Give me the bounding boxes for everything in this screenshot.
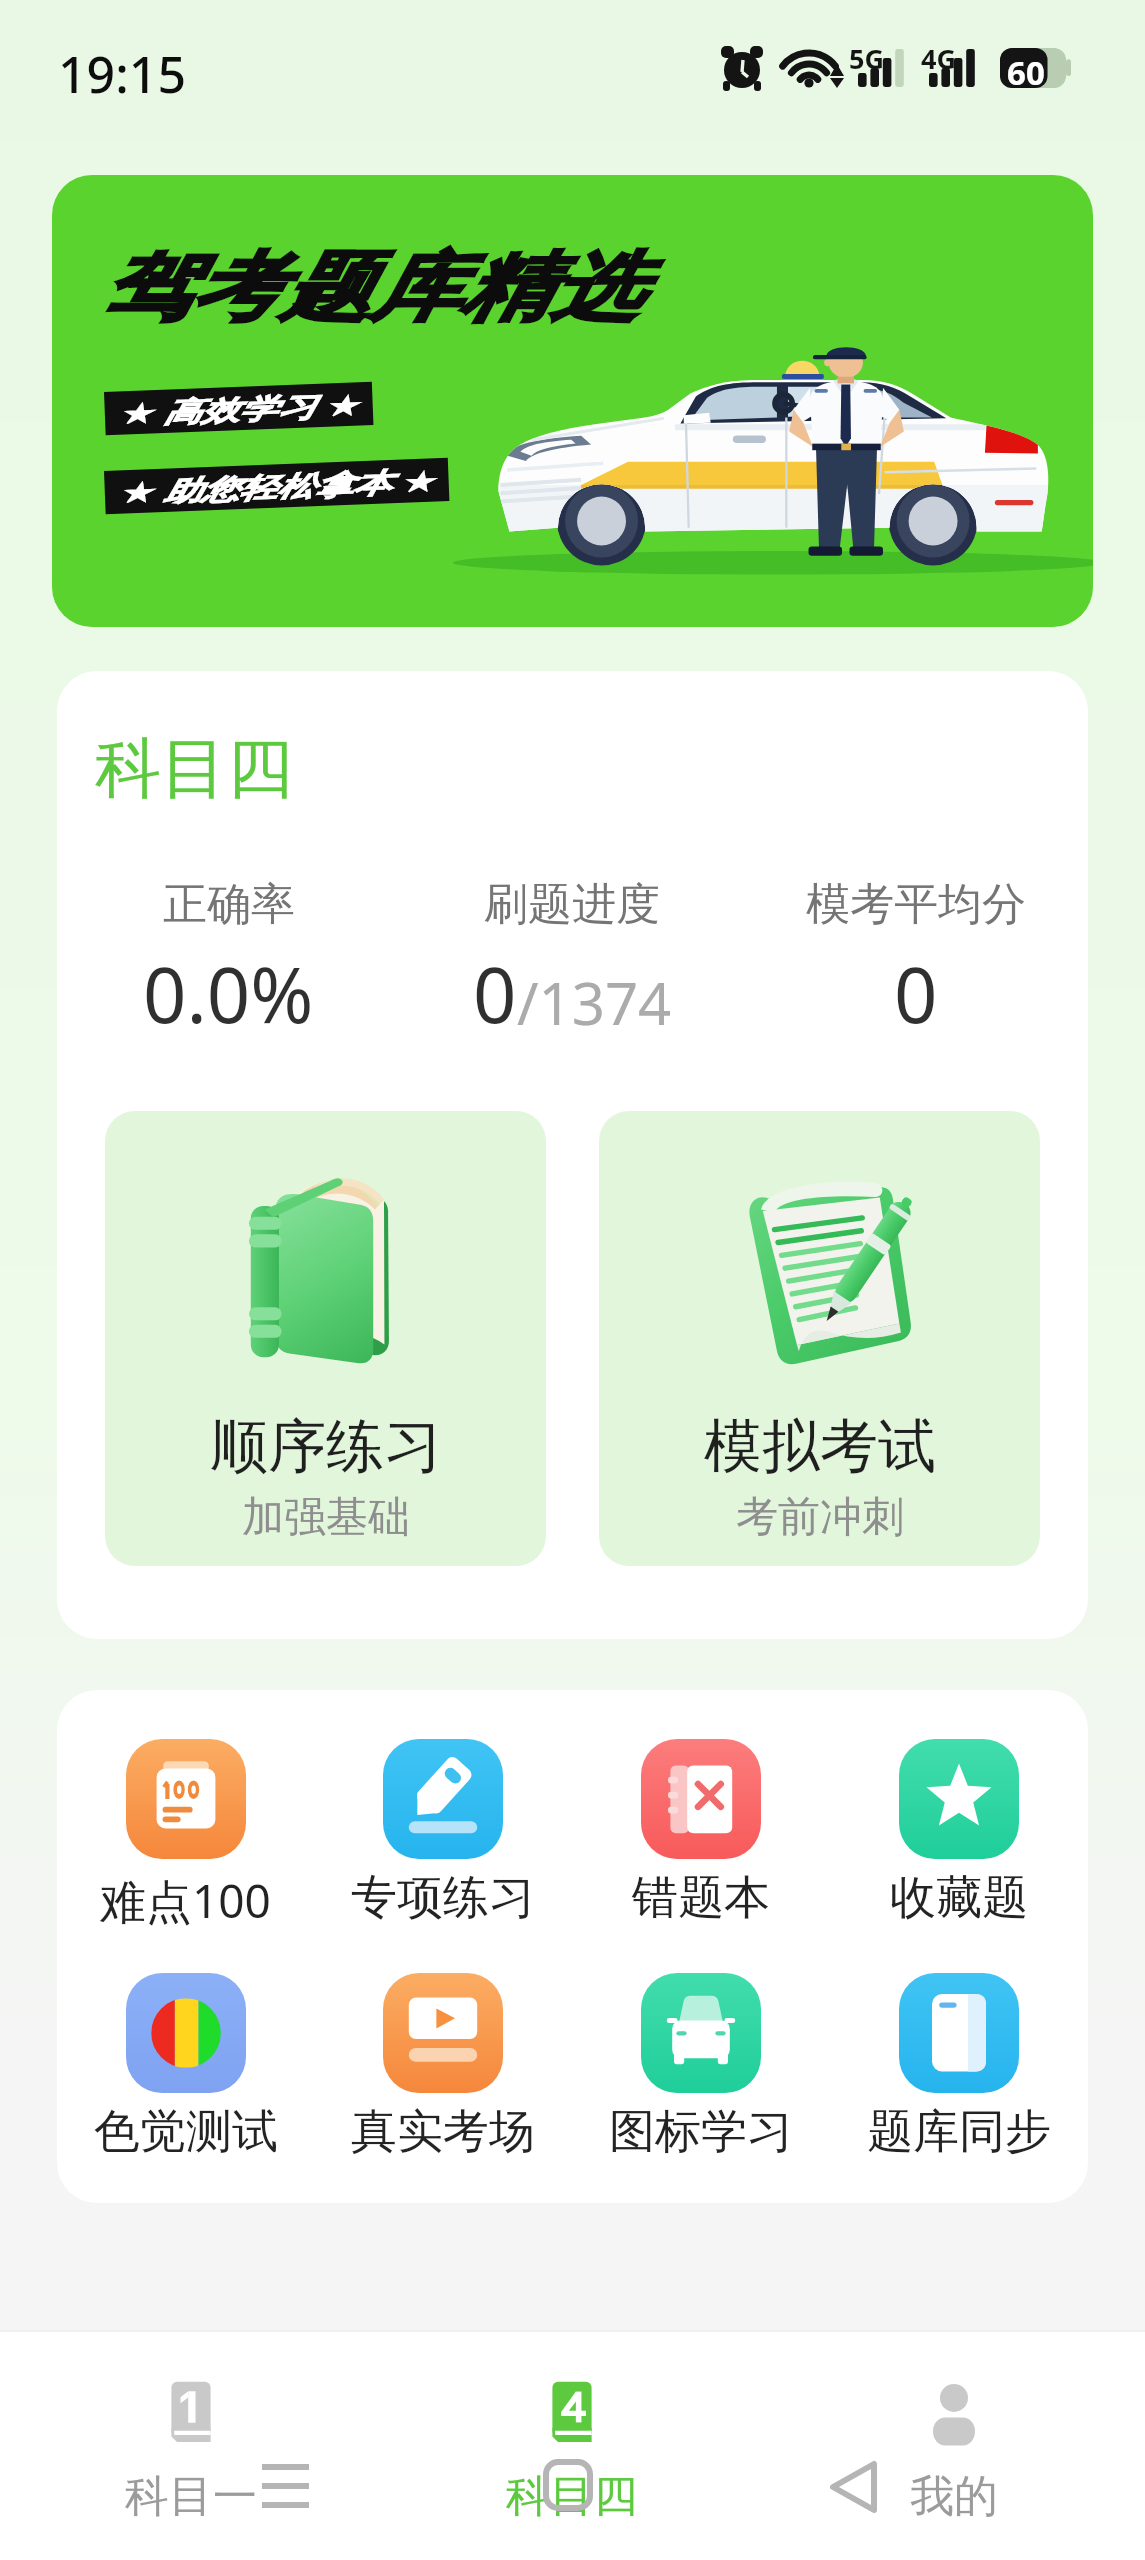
button[interactable]: 难点100 — [57, 1739, 314, 1932]
staticText: 5G — [849, 40, 884, 77]
staticText: 0 — [894, 942, 938, 1046]
staticText: 刷题进度 — [484, 877, 660, 932]
staticText: 色觉测试 — [94, 2103, 278, 2161]
staticText: 我的 — [910, 2469, 998, 2524]
staticText: 真实考场 — [351, 2103, 535, 2161]
button[interactable]: 科目四 — [381, 2332, 763, 2560]
staticText: 60 — [1007, 50, 1045, 95]
staticText: 模考平均分 — [806, 877, 1026, 932]
button[interactable]: 模拟考试 — [599, 1111, 1040, 1566]
staticText: ★ 助您轻松拿本 ★ — [118, 461, 435, 511]
staticText: 19:15 — [58, 40, 186, 108]
staticText: 专项练习 — [351, 1869, 535, 1927]
button[interactable]: 题库同步 — [830, 1973, 1088, 2161]
button[interactable]: 专项练习 — [314, 1739, 572, 1927]
staticText: 加强基础 — [242, 1491, 410, 1544]
staticText: 正确率 — [163, 877, 295, 932]
staticText: 科目四 — [95, 727, 293, 810]
staticText: 科目四 — [506, 2469, 638, 2524]
button[interactable]: 驾考题库精选横幅 — [52, 175, 1093, 627]
button[interactable]: 我的 — [763, 2332, 1145, 2560]
button[interactable]: 科目一 — [0, 2332, 381, 2560]
staticText: 4G — [921, 40, 956, 77]
staticText: 图标学习 — [609, 2103, 793, 2161]
button[interactable]: 错题本 — [572, 1739, 830, 1927]
staticText: 错题本 — [632, 1869, 770, 1927]
button[interactable]: 图标学习 — [572, 1973, 830, 2161]
button[interactable]: 真实考场 — [314, 1973, 572, 2161]
staticText: 考前冲刺 — [736, 1491, 904, 1544]
staticText: 0 — [473, 942, 517, 1046]
button[interactable]: 色觉测试 — [57, 1973, 314, 2161]
staticText: 顺序练习 — [210, 1410, 442, 1483]
staticText: 科目一 — [125, 2469, 257, 2524]
staticText: ★ 高效学习 ★ — [118, 385, 359, 432]
staticText: 驾考题库精选 — [100, 241, 640, 335]
button[interactable]: 顺序练习 — [105, 1111, 546, 1566]
staticText: 难点100 — [100, 1869, 271, 1932]
staticText: 收藏题 — [890, 1869, 1028, 1927]
staticText: 题库同步 — [867, 2103, 1051, 2161]
staticText: 0.0% — [143, 942, 314, 1046]
button[interactable]: 收藏题 — [830, 1739, 1088, 1927]
staticText: /1374 — [517, 963, 672, 1042]
staticText: 模拟考试 — [704, 1410, 936, 1483]
